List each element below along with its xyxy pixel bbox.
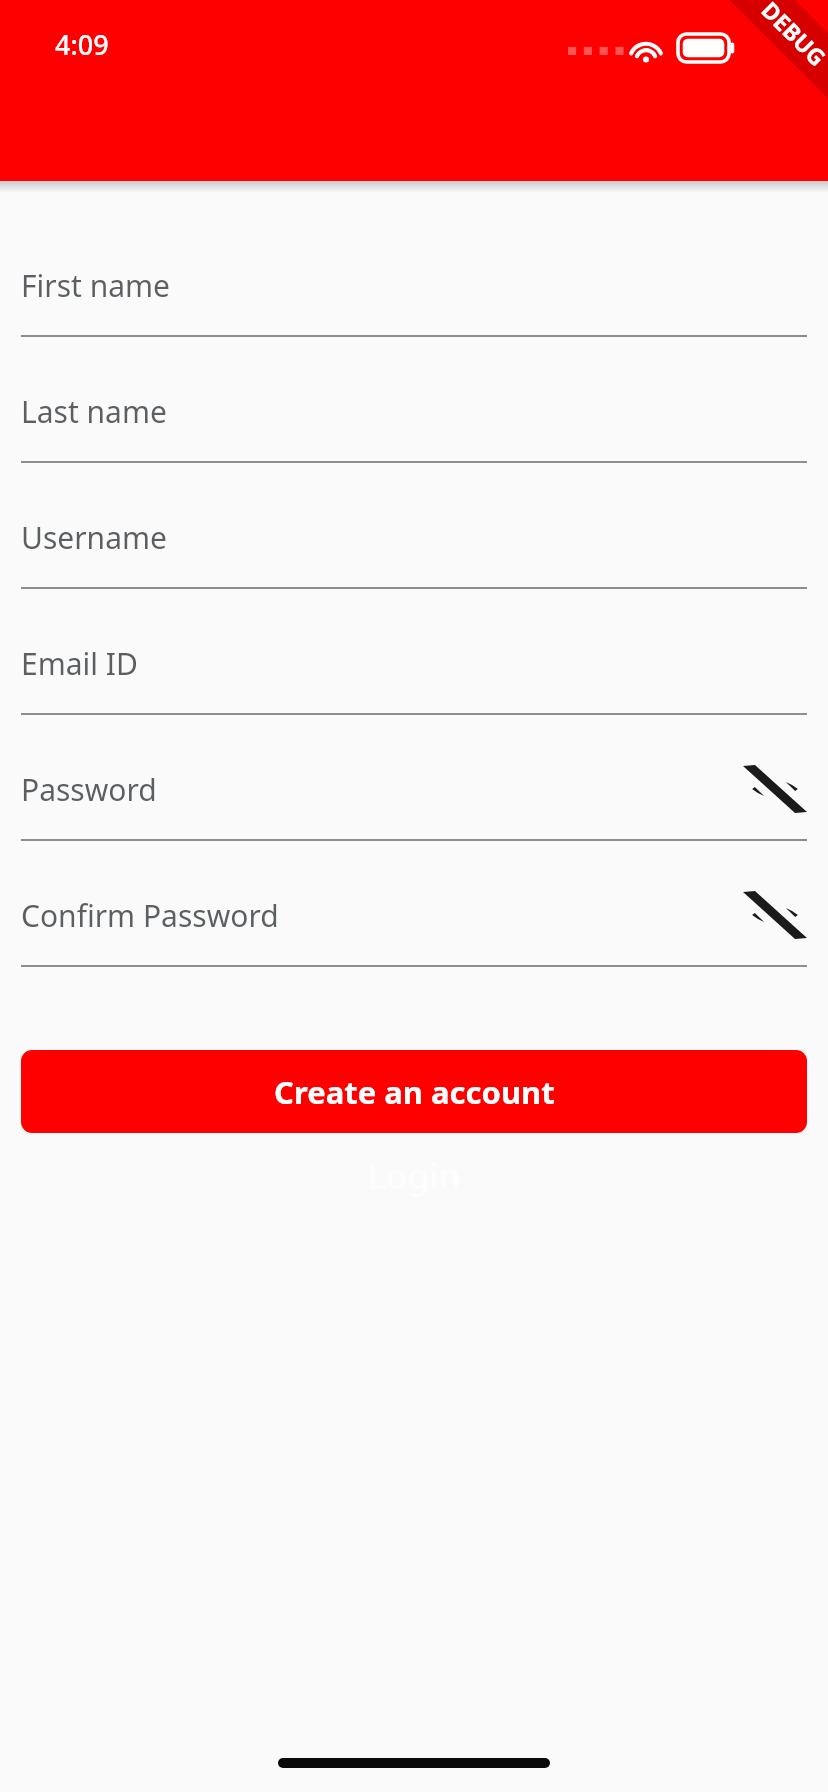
button[interactable]: Last name xyxy=(21,361,807,461)
staticText: Create an account xyxy=(274,1071,555,1113)
button[interactable]: Toggle password visibility xyxy=(743,883,807,947)
staticText: First name xyxy=(21,265,171,306)
button[interactable]: Create an account xyxy=(21,1050,807,1133)
button[interactable]: First name xyxy=(21,235,807,335)
button[interactable]: Toggle password visibility xyxy=(743,757,807,821)
staticText: 4:09 xyxy=(55,26,109,63)
button[interactable]: Password xyxy=(21,739,807,839)
button[interactable]: Username xyxy=(21,487,807,587)
button[interactable]: Confirm Password xyxy=(21,865,807,965)
staticText: Last name xyxy=(21,391,167,432)
staticText: Email ID xyxy=(21,643,138,684)
staticText: Password xyxy=(21,769,157,810)
button[interactable]: Email ID xyxy=(21,613,807,713)
staticText: Username xyxy=(21,517,167,558)
staticText: Confirm Password xyxy=(21,895,279,936)
staticText: DEBUG xyxy=(755,0,828,73)
